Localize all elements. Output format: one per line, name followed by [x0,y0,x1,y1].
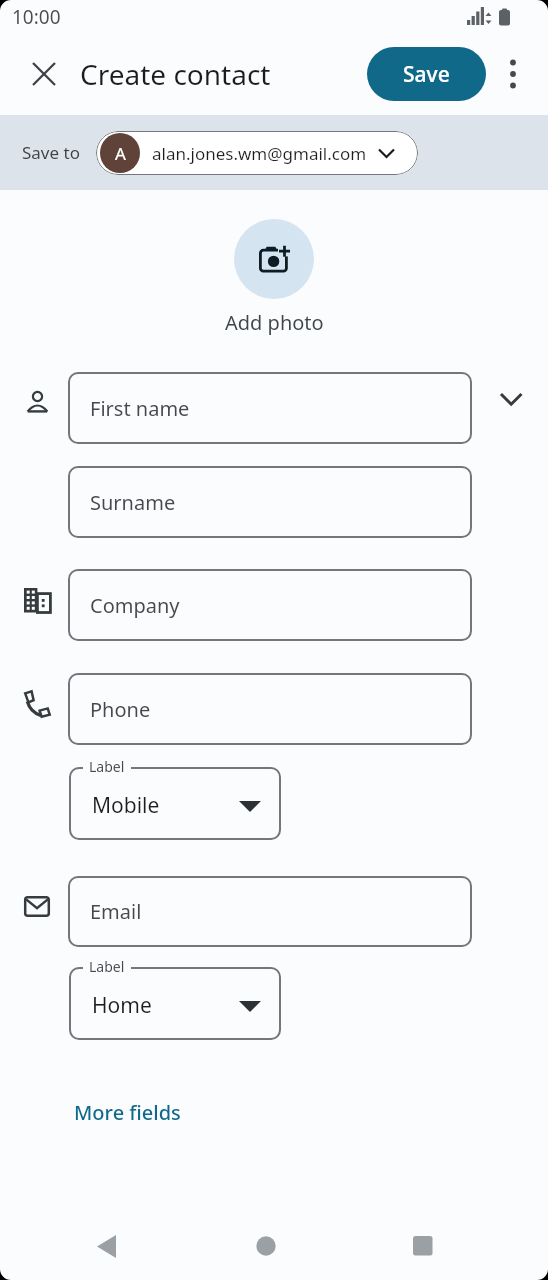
button[interactable]: Company [68,569,472,641]
button[interactable]: Surname [68,466,472,538]
staticText: Phone [90,696,151,723]
staticText: Save to [22,141,80,164]
button[interactable] [403,1226,443,1266]
staticText: Label [89,957,125,976]
button[interactable]: First name [68,372,472,444]
button[interactable] [234,219,314,299]
button[interactable] [492,53,534,95]
button[interactable]: Email [68,876,472,947]
staticText: Home [92,991,152,1020]
staticText: Company [90,592,180,619]
staticText: Save [403,60,450,89]
button[interactable]: Home [69,967,281,1040]
button[interactable]: Mobile [69,767,281,840]
staticText: Label [89,757,125,776]
button[interactable]: More fields [60,1085,195,1140]
staticText: Mobile [92,791,160,820]
staticText: 10:00 [12,4,61,30]
staticText: First name [90,395,190,422]
button[interactable] [492,380,530,418]
staticText: Create contact [80,55,271,93]
button[interactable]: A [96,131,418,175]
staticText: Add photo [225,309,324,336]
staticText: Email [90,898,142,925]
staticText: A [115,142,126,165]
button[interactable]: Phone [68,673,472,745]
button[interactable]: Save [367,47,486,101]
button[interactable] [246,1226,286,1266]
staticText: alan.jones.wm@gmail.com [152,142,367,165]
button[interactable] [86,1226,126,1266]
button[interactable] [22,52,66,96]
staticText: More fields [74,1099,181,1126]
staticText: Surname [90,489,176,516]
